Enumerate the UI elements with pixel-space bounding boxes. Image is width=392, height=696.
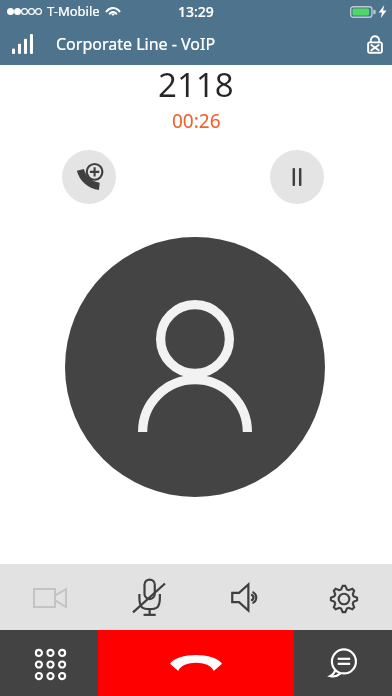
button[interactable]: Video call	[0, 564, 98, 630]
button[interactable]: Hold call	[270, 150, 324, 204]
button[interactable]: End call	[98, 630, 294, 696]
button[interactable]: Speaker	[196, 564, 294, 630]
staticText: 00:26	[172, 108, 221, 132]
button[interactable]: Unmute microphone	[98, 564, 196, 630]
staticText: T-Mobile	[47, 2, 100, 20]
button[interactable]: Settings	[294, 564, 392, 630]
button[interactable]: Add call	[62, 150, 116, 204]
button[interactable]: Messages	[294, 630, 392, 696]
staticText: 13:29	[178, 2, 214, 21]
staticText: Corporate Line - VoIP	[56, 33, 216, 55]
button[interactable]: Call not encrypted	[353, 22, 392, 66]
button[interactable]: Dialpad	[0, 630, 98, 696]
staticText: 2118	[158, 62, 234, 106]
